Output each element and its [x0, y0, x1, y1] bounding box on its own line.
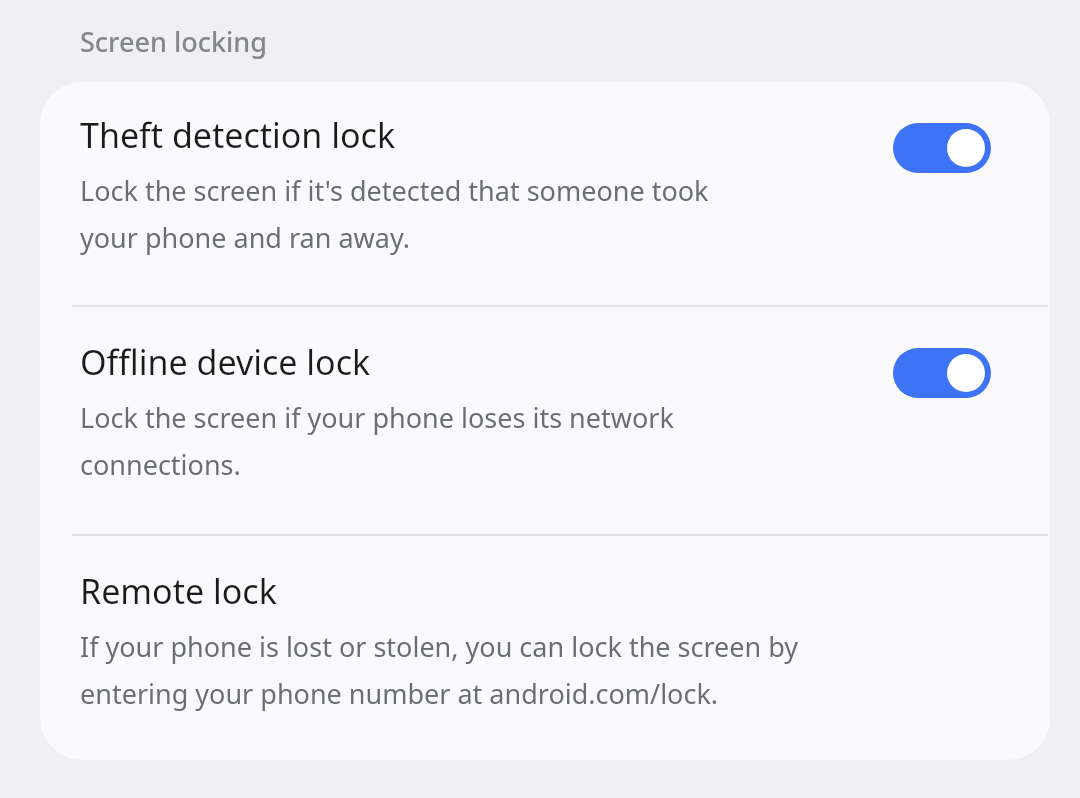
staticText: Remote lock	[80, 568, 277, 614]
staticText: Lock the screen if it's detected that so…	[80, 172, 709, 256]
button[interactable]: Theft detection lock	[40, 82, 1050, 305]
staticText: Offline device lock	[80, 339, 371, 385]
button[interactable]: Toggle setting	[893, 348, 991, 398]
staticText: Screen locking	[80, 23, 268, 60]
staticText: Lock the screen if your phone loses its …	[80, 399, 674, 483]
staticText: If your phone is lost or stolen, you can…	[80, 628, 799, 712]
staticText: Theft detection lock	[80, 112, 396, 158]
button[interactable]: Remote lock	[40, 536, 1050, 760]
button[interactable]: Toggle setting	[893, 123, 991, 173]
button[interactable]: Offline device lock	[40, 307, 1050, 534]
